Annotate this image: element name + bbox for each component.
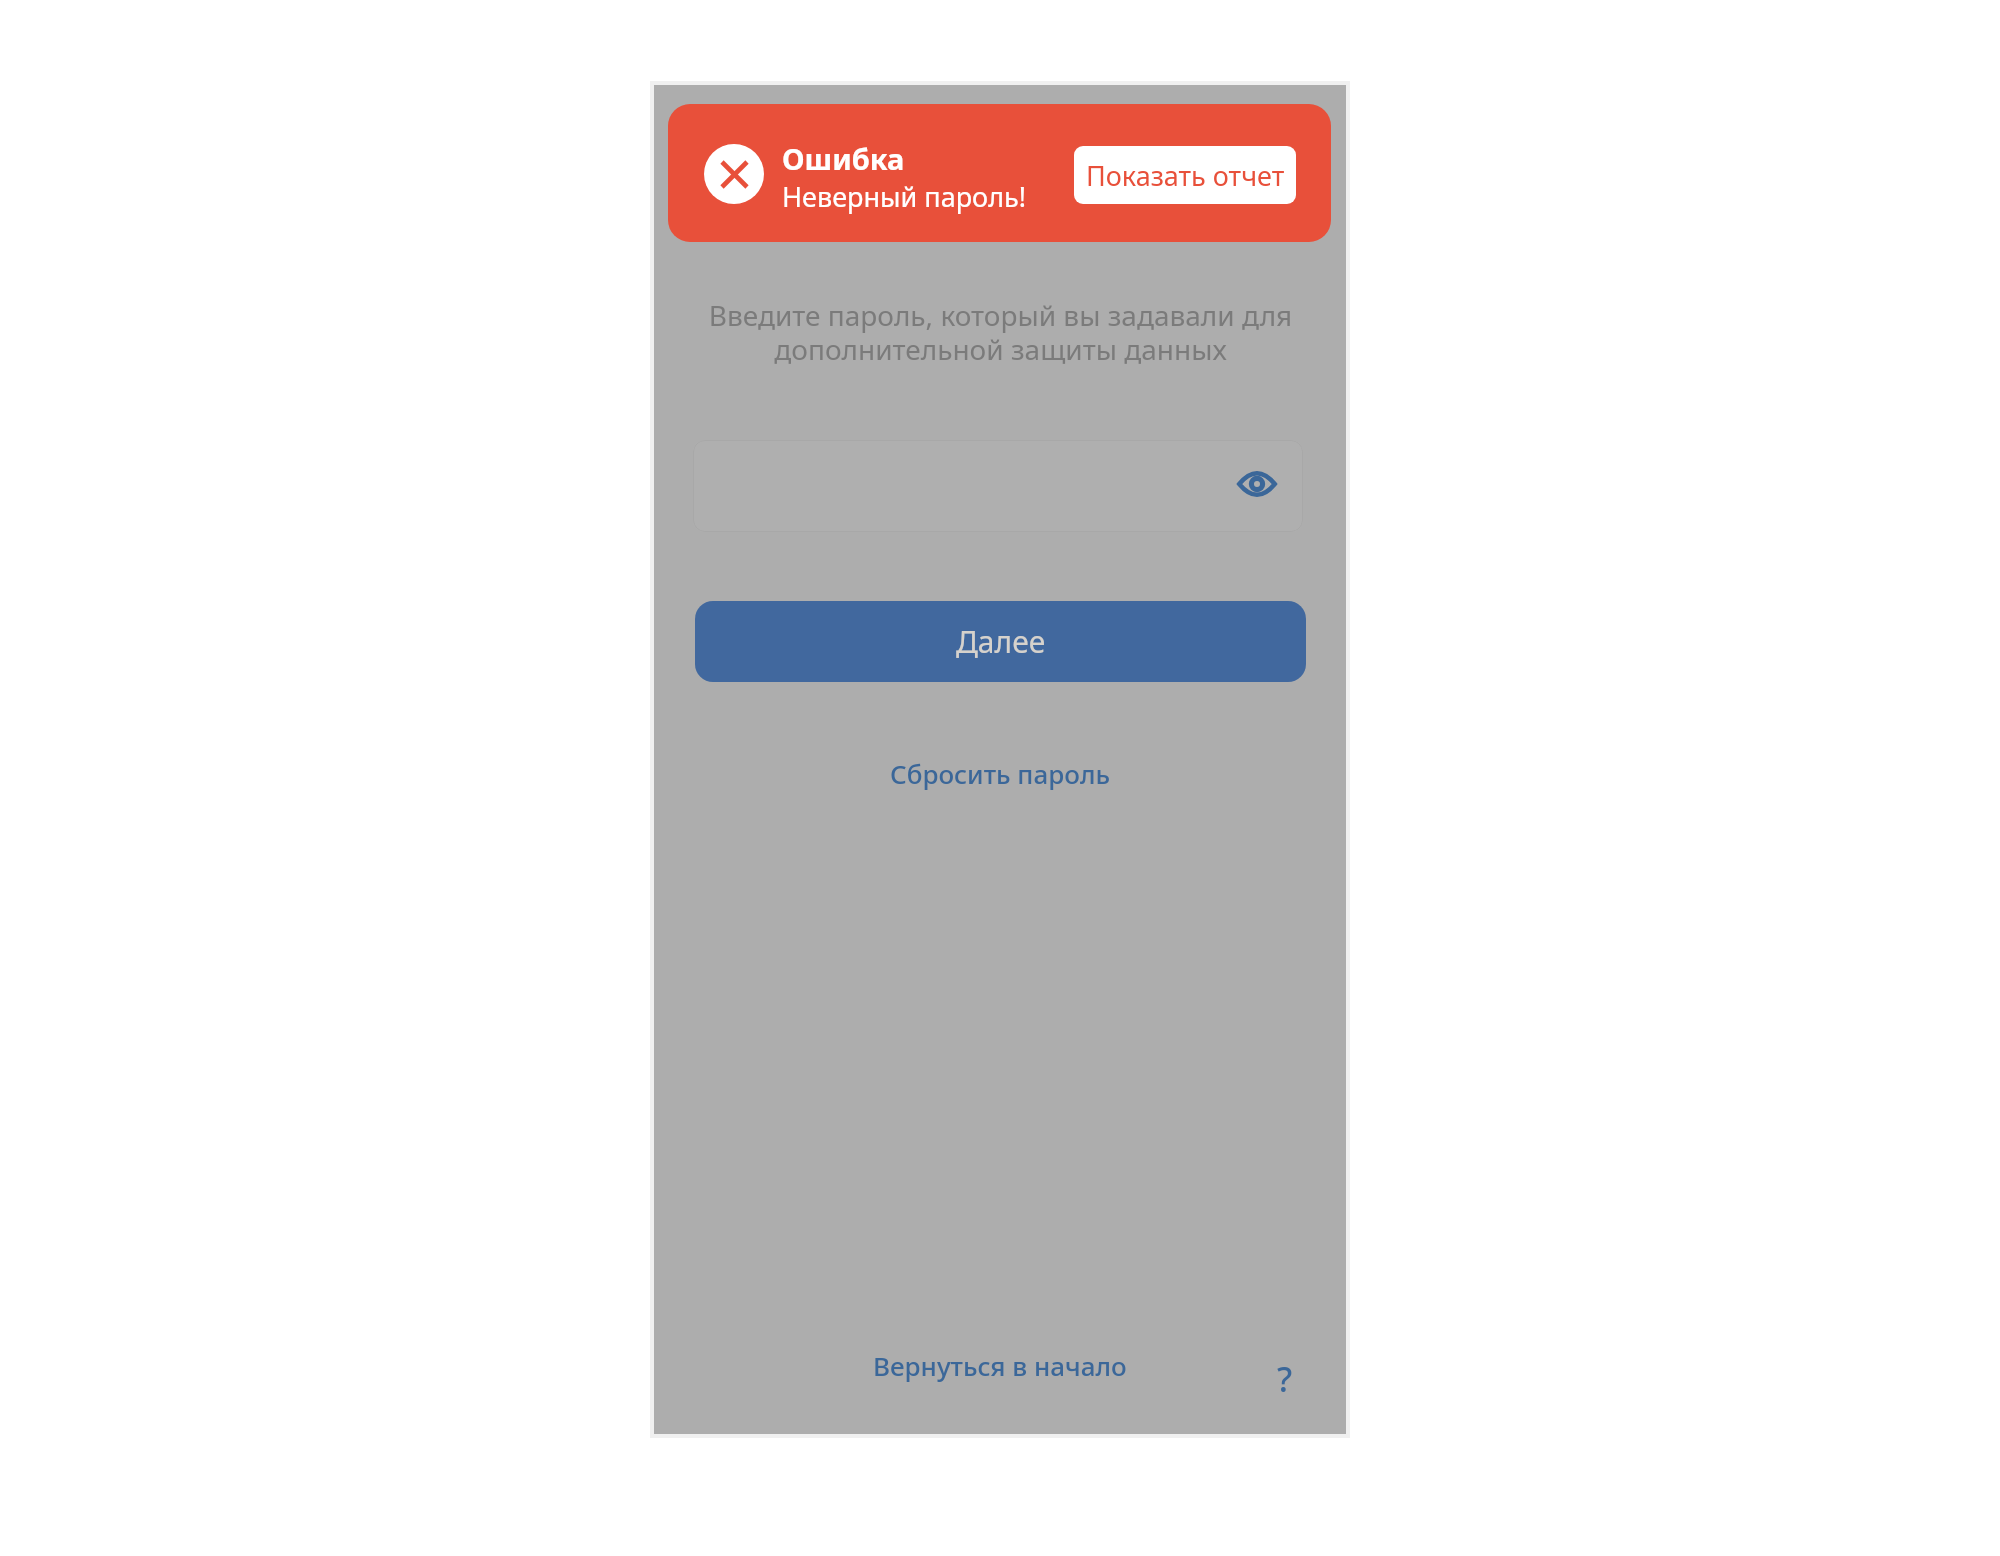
staticText: Сбросить пароль xyxy=(890,756,1110,791)
button[interactable]: Показать отчет xyxy=(1074,146,1296,204)
button[interactable]: Ошибка xyxy=(668,104,1331,242)
button[interactable]: Показать пароль xyxy=(693,440,1303,532)
staticText: Далее xyxy=(956,621,1046,662)
button[interactable]: Справка xyxy=(1263,1356,1307,1400)
staticText: Неверный пароль! xyxy=(782,178,1026,215)
staticText: Ошибка xyxy=(782,139,905,178)
staticText: ? xyxy=(1277,1356,1293,1400)
button[interactable]: Показать пароль xyxy=(1235,462,1279,506)
staticText: Показать отчет xyxy=(1086,157,1285,194)
staticText: Введите пароль, который вы задавали для … xyxy=(674,296,1327,368)
button[interactable]: Сбросить пароль xyxy=(876,748,1124,799)
staticText: Вернуться в начало xyxy=(873,1348,1127,1383)
button[interactable]: Далее xyxy=(695,601,1306,682)
button[interactable]: Вернуться в начало xyxy=(859,1340,1141,1391)
